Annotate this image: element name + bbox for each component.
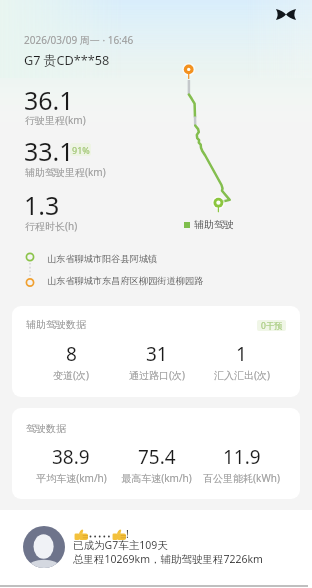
staticText: 总里程10269km，辅助驾驶里程7226km [73,552,263,566]
staticText: 百公里能耗(kWh) [203,471,280,485]
staticText: 汇入汇出(次) [214,368,270,382]
staticText: 36.1 [24,83,74,117]
staticText: 8 [66,341,77,367]
staticText: 0干预 [261,320,283,331]
staticText: 行驶里程(km) [25,113,86,127]
staticText: 33.1 [24,134,74,168]
staticText: 75.4 [138,444,176,470]
staticText: 山东省聊城市阳谷县阿城镇 [47,253,158,265]
staticText: G7 贵CD***58 [24,51,110,68]
staticText: 通过路口(次) [129,368,185,382]
staticText: 2026/03/09 周一 · 16:46 [24,33,134,47]
staticText: 驾驶数据 [26,422,66,435]
staticText: 1 [236,341,247,367]
staticText: 1.3 [24,188,60,222]
button[interactable]: ! [0,510,312,588]
staticText: 辅助驾驶 [194,218,234,231]
staticText: 31 [146,341,168,367]
staticText: ! [126,527,129,541]
staticText: 平均车速(km/h) [36,471,107,485]
staticText: 已成为G7车主109天 [73,538,168,552]
staticText: 行程时长(h) [25,219,78,233]
staticText: 变道(次) [53,368,89,382]
staticText: 11.9 [223,444,261,470]
staticText: 辅助驾驶数据 [26,318,86,331]
staticText: 辅助驾驶里程(km) [25,165,106,179]
staticText: 最高车速(km/h) [121,471,192,485]
button[interactable]: Share [272,1,300,28]
staticText: 91% [72,144,90,156]
staticText: 38.9 [52,444,90,470]
staticText: 山东省聊城市东昌府区柳园街道柳园路 [47,275,204,287]
